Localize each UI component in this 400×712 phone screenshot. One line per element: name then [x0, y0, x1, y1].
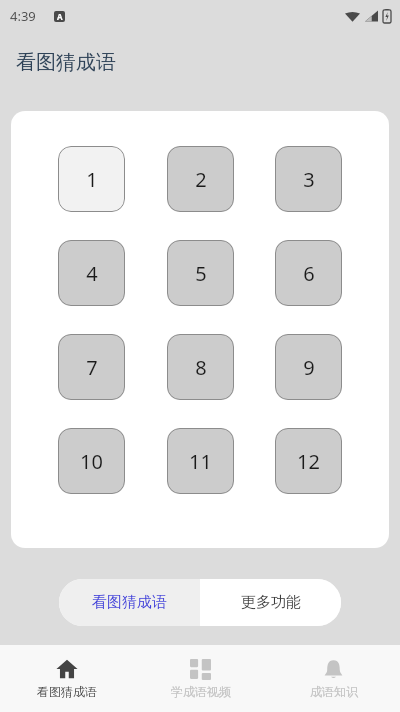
staticText: 9: [303, 354, 315, 381]
staticText: 1: [86, 166, 98, 193]
button[interactable]: 12: [275, 428, 342, 494]
staticText: A: [57, 11, 63, 22]
staticText: 看图猜成语: [16, 50, 116, 75]
staticText: 4:39: [10, 7, 36, 25]
staticText: 看图猜成语: [37, 684, 97, 699]
button[interactable]: 11: [167, 428, 234, 494]
button[interactable]: 5: [167, 240, 234, 306]
button[interactable]: 更多功能: [200, 579, 341, 626]
button[interactable]: 10: [58, 428, 125, 494]
button[interactable]: 6: [275, 240, 342, 306]
button[interactable]: 2: [167, 146, 234, 212]
staticText: 7: [86, 354, 98, 381]
button[interactable]: 成语知识: [267, 645, 400, 712]
button[interactable]: 看图猜成语: [0, 645, 134, 712]
button[interactable]: 3: [275, 146, 342, 212]
staticText: 12: [297, 448, 320, 475]
staticText: 3: [303, 166, 315, 193]
button[interactable]: 8: [167, 334, 234, 400]
staticText: 8: [195, 354, 207, 381]
staticText: 11: [189, 448, 212, 475]
staticText: 学成语视频: [171, 684, 231, 699]
button[interactable]: 7: [58, 334, 125, 400]
button[interactable]: 9: [275, 334, 342, 400]
staticText: 6: [303, 260, 315, 287]
button[interactable]: 4: [58, 240, 125, 306]
button[interactable]: 看图猜成语: [59, 579, 200, 626]
staticText: 成语知识: [310, 684, 358, 699]
staticText: 更多功能: [241, 593, 301, 612]
staticText: 4: [86, 260, 98, 287]
staticText: 看图猜成语: [92, 593, 167, 612]
staticText: 5: [195, 260, 207, 287]
button[interactable]: 学成语视频: [134, 645, 267, 712]
staticText: 10: [80, 448, 103, 475]
button[interactable]: 1: [58, 146, 125, 212]
staticText: 2: [195, 166, 207, 193]
